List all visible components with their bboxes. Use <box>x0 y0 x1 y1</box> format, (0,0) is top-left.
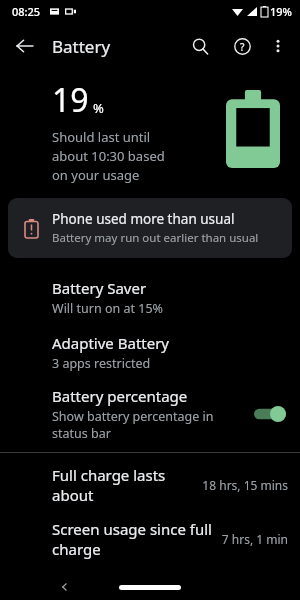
button[interactable]: Back gesture <box>60 582 70 592</box>
staticText: 19 <box>52 78 89 122</box>
staticText: Should last until about 10:30 based on y… <box>52 128 165 184</box>
button[interactable]: More options <box>260 28 296 64</box>
staticText: Battery may run out earlier than usual <box>52 230 259 246</box>
staticText: Screen usage since full charge <box>52 519 215 559</box>
staticText: Adaptive Battery <box>52 333 170 353</box>
staticText: 19% <box>270 4 292 19</box>
staticText: 7 hrs, 1 min <box>221 531 288 547</box>
button[interactable]: Phone used more than usual <box>8 198 292 258</box>
staticText: 08:25 <box>12 4 41 19</box>
button[interactable]: Battery percentage <box>0 386 300 442</box>
button[interactable]: Full charge lasts about <box>0 465 300 505</box>
staticText: ? <box>240 40 245 54</box>
button[interactable]: Help <box>224 28 260 64</box>
button[interactable]: Battery Saver <box>0 276 300 319</box>
staticText: Battery Saver <box>52 278 147 298</box>
button[interactable]: Search <box>182 28 218 64</box>
staticText: Battery percentage <box>52 386 188 406</box>
button[interactable]: Adaptive Battery <box>0 331 300 374</box>
staticText: % <box>93 99 104 117</box>
button[interactable]: Back <box>6 27 44 65</box>
button[interactable]: Battery percentage toggle <box>254 404 286 424</box>
staticText: Phone used more than usual <box>52 210 235 228</box>
staticText: 3 apps restricted <box>52 355 151 372</box>
staticText: Full charge lasts about <box>52 465 196 505</box>
staticText: Will turn on at 15% <box>52 300 163 317</box>
button[interactable]: Screen usage since full charge <box>0 519 300 559</box>
staticText: Show battery percentage in status bar <box>52 408 214 442</box>
staticText: 18 hrs, 15 mins <box>202 477 288 493</box>
staticText: Battery <box>52 35 111 58</box>
